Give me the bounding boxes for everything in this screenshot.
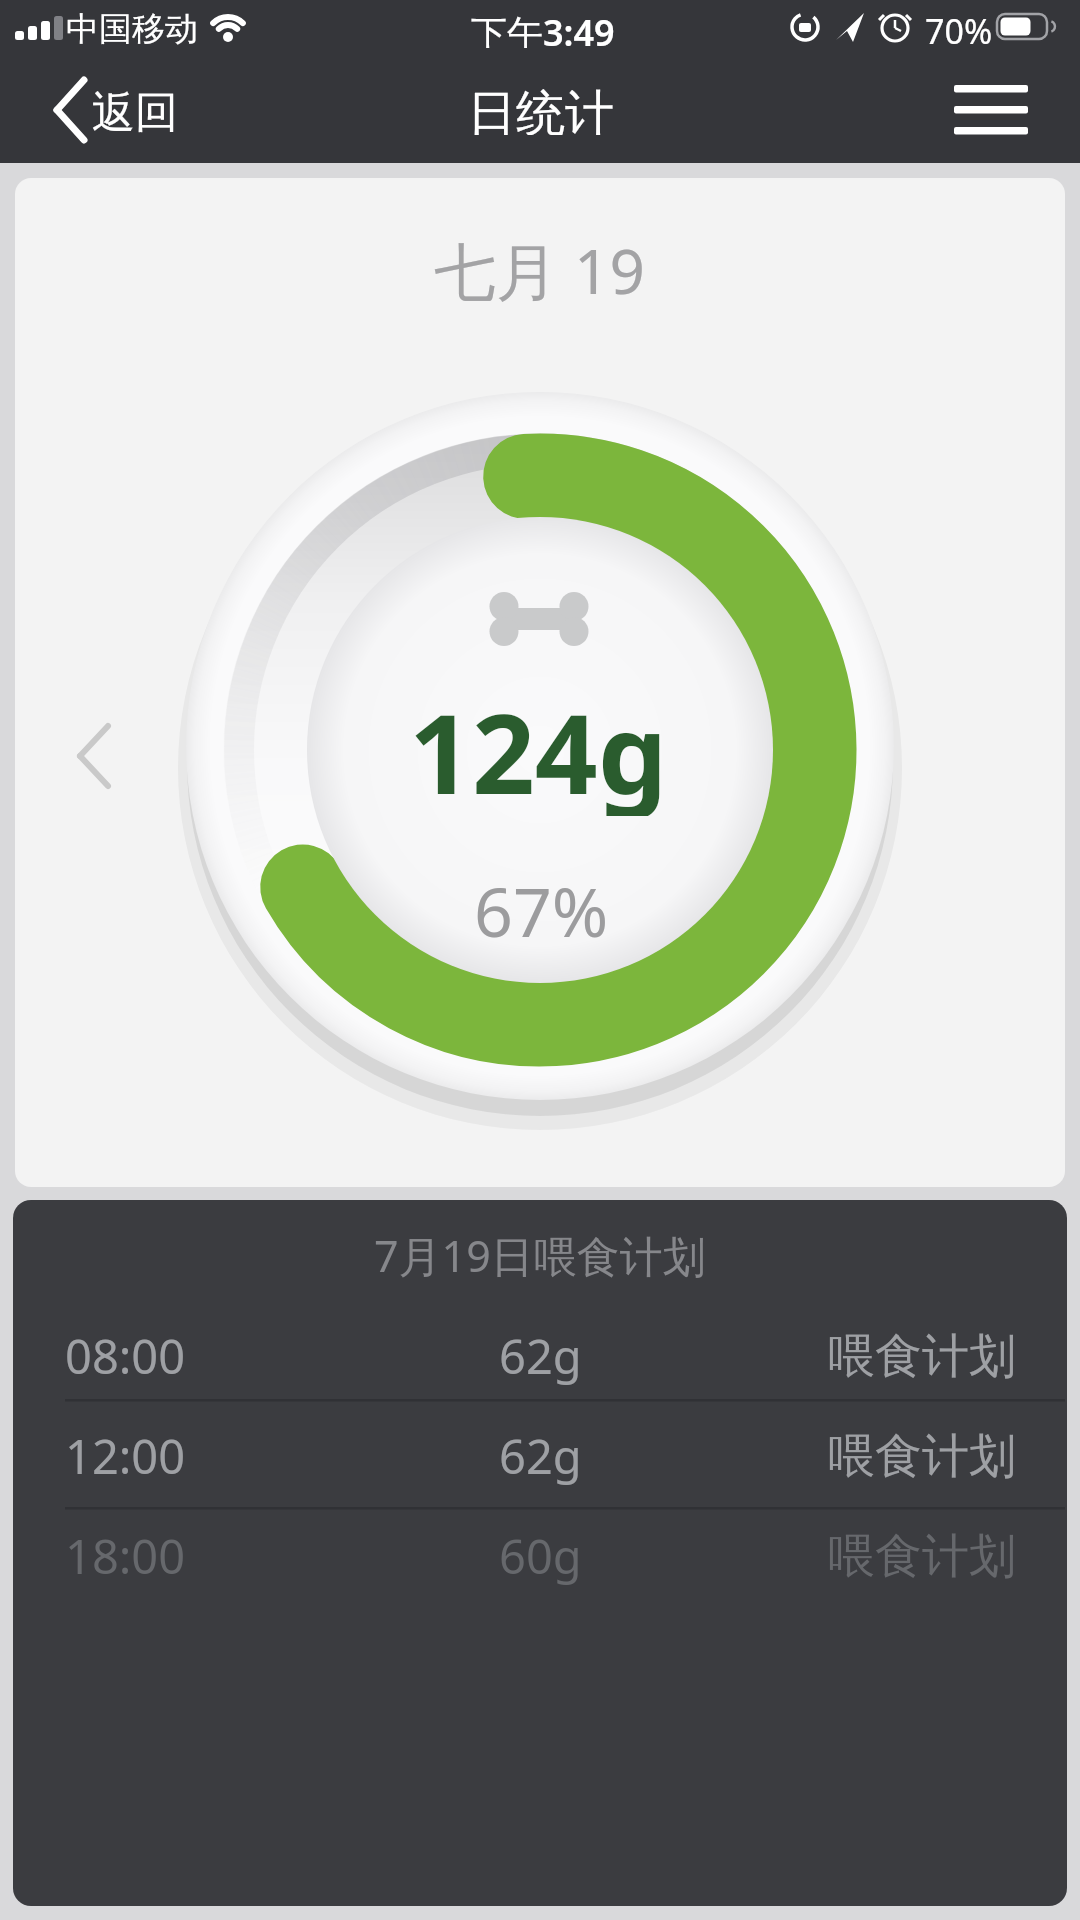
- staticText: 62g: [499, 1424, 582, 1488]
- staticText: 下午3:49: [471, 8, 615, 48]
- button[interactable]: 08:00: [13, 1306, 1067, 1406]
- button[interactable]: 12:00: [13, 1406, 1067, 1506]
- staticText: 12:00: [65, 1424, 186, 1488]
- staticText: 60g: [499, 1524, 582, 1588]
- staticText: 08:00: [65, 1324, 186, 1388]
- staticText: 中国移动: [66, 8, 198, 48]
- staticText: 喂食计划: [828, 1327, 1016, 1386]
- staticText: 7月19日喂食计划: [374, 1226, 706, 1284]
- button[interactable]: [930, 65, 1050, 155]
- staticText: 62g: [499, 1324, 582, 1388]
- button[interactable]: 18:00: [13, 1506, 1067, 1606]
- staticText: 124g: [409, 676, 668, 816]
- staticText: 喂食计划: [828, 1527, 1016, 1586]
- staticText: 七月 19: [434, 228, 646, 302]
- staticText: 日统计: [467, 83, 614, 135]
- staticText: 18:00: [65, 1524, 186, 1588]
- staticText: 67%: [474, 864, 609, 944]
- button[interactable]: [55, 700, 135, 810]
- button[interactable]: [15, 178, 1065, 1187]
- staticText: 喂食计划: [828, 1427, 1016, 1486]
- button[interactable]: [40, 70, 190, 150]
- staticText: 返回: [92, 86, 178, 134]
- staticText: 70%: [925, 8, 993, 48]
